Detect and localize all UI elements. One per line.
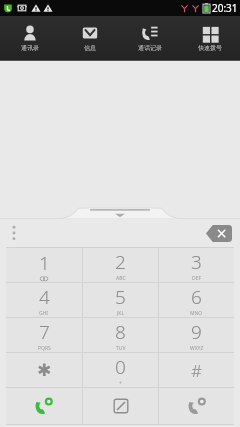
staticText: 3	[191, 249, 202, 275]
staticText: 20:31	[212, 1, 238, 15]
staticText: 快速拨号	[198, 44, 222, 52]
button[interactable]: 5	[83, 283, 158, 317]
button[interactable]: 3	[159, 248, 234, 282]
button[interactable]: 通讯录	[0, 16, 60, 60]
button[interactable]: 通话记录	[120, 16, 180, 60]
button[interactable]: Call SIM 1	[6, 388, 82, 424]
staticText: ✱	[37, 360, 52, 380]
button[interactable]: ✱	[6, 353, 82, 387]
staticText: 6	[191, 284, 202, 310]
button[interactable]: Add contact	[83, 388, 158, 424]
staticText: JKL	[117, 310, 125, 317]
button[interactable]: 2	[83, 248, 158, 282]
button[interactable]: 4	[6, 283, 82, 317]
staticText: ABC	[116, 275, 126, 282]
staticText: 7	[39, 319, 50, 345]
button[interactable]: Backspace	[206, 225, 232, 242]
staticText: 通话记录	[138, 44, 162, 52]
staticText: +	[119, 380, 122, 387]
button[interactable]: 信息	[60, 16, 120, 60]
staticText: 5	[115, 284, 126, 310]
staticText: 0	[115, 354, 126, 380]
staticText: #	[191, 359, 202, 382]
button[interactable]: 快速拨号	[180, 16, 240, 60]
staticText: MNO	[190, 310, 203, 317]
button[interactable]: More options	[6, 221, 22, 245]
staticText: 8	[115, 319, 126, 345]
staticText: WXYZ	[190, 345, 204, 352]
staticText: DEF	[192, 275, 202, 282]
button[interactable]: Call SIM 2	[159, 388, 234, 424]
staticText: 4	[39, 284, 50, 310]
button[interactable]: 9	[159, 318, 234, 352]
staticText: PQRS	[38, 345, 51, 352]
button[interactable]: 0	[83, 353, 158, 387]
staticText: 1	[39, 250, 50, 276]
staticText: GHI	[39, 310, 49, 317]
staticText: 2	[115, 249, 126, 275]
staticText: 9	[191, 319, 202, 345]
staticText: 信息	[84, 44, 96, 52]
button[interactable]: 7	[6, 318, 82, 352]
button[interactable]: 1	[6, 248, 82, 282]
staticText: TUV	[116, 345, 126, 352]
staticText: 通讯录	[21, 44, 39, 52]
button[interactable]: 6	[159, 283, 234, 317]
button[interactable]: 8	[83, 318, 158, 352]
button[interactable]: #	[159, 353, 234, 387]
